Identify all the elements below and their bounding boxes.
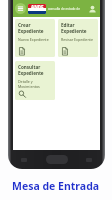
staticText: Revisar Expediente [61,37,93,42]
button[interactable]: Home [46,155,68,164]
button[interactable]: Account [86,3,98,15]
button[interactable]: Editar Expediente [58,19,98,57]
button[interactable]: ANDE logo [28,4,46,14]
button[interactable]: Crear Expediente [15,19,55,57]
staticText: Mesa de Entrada [12,179,100,193]
button[interactable]: Consultar Expediente [15,61,55,100]
button[interactable]: Menu [15,3,26,14]
staticText: Crear Expediente [18,22,53,34]
staticText: Consultar Expediente [18,64,53,76]
staticText: consulta de estado de expediente [48,7,86,11]
staticText: Editar Expediente [61,22,96,34]
staticText: Detalle y Movimientos [18,79,53,89]
staticText: Nuevo Expediente [18,37,49,42]
staticText: ANDE [31,4,44,8]
